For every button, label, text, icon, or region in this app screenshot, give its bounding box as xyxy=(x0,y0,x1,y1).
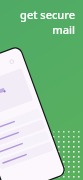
button[interactable]: get secure xyxy=(15,7,75,37)
staticText: get secure xyxy=(20,7,75,22)
button[interactable]: Secure mail app preview xyxy=(0,47,51,180)
staticText: mail xyxy=(52,22,75,37)
